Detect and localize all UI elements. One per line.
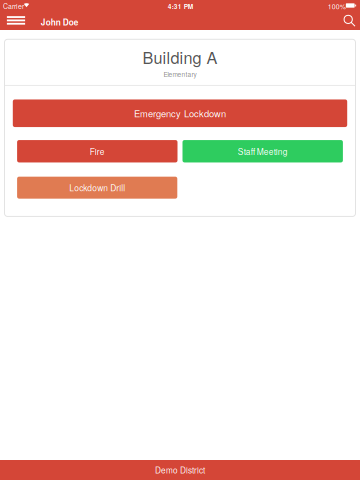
staticText: Carrier [3,1,24,11]
staticText: Elementary [163,70,196,79]
staticText: Fire [90,145,105,157]
button[interactable]: John Doe [30,14,90,31]
staticText: John Doe [41,16,79,28]
staticText: Emergency Lockdown [134,107,226,120]
staticText: Demo District [155,464,205,476]
button[interactable]: Lockdown Drill [17,177,177,199]
staticText: 4:31 PM [168,2,193,11]
staticText: Lockdown Drill [69,182,125,194]
button[interactable]: Staff Meeting [182,140,343,162]
button[interactable]: Emergency Lockdown [13,99,347,127]
button[interactable]: Menu [0,12,32,29]
staticText: Staff Meeting [238,145,288,157]
button[interactable]: Search [337,12,360,29]
button[interactable]: Fire [17,140,177,162]
staticText: Building A [142,45,217,69]
staticText: 100% [328,1,346,11]
